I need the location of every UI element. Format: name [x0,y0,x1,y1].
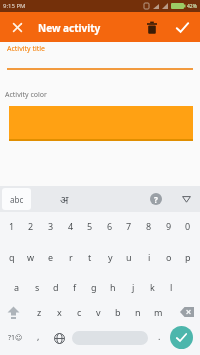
staticText: l [170,281,173,293]
button[interactable]: 4 [61,216,81,236]
staticText: s [35,281,40,293]
staticText: i [148,251,151,263]
button[interactable]: o [159,247,179,267]
button[interactable]: t [80,247,100,267]
staticText: 4 [68,220,74,232]
staticText: d [53,281,59,293]
staticText: 0 [185,220,191,232]
button[interactable]: f [65,277,85,297]
staticText: x [57,306,62,318]
staticText: . [158,330,161,342]
button[interactable]: d [46,277,66,297]
button[interactable]: q [2,247,22,267]
button[interactable]: c [69,302,89,322]
button[interactable]: 3 [41,216,61,236]
button[interactable]: w [21,247,41,267]
button[interactable]: b [108,302,128,322]
button[interactable]: अ [52,187,76,211]
button[interactable] [7,17,27,37]
staticText: 9:15 PM [3,2,26,10]
staticText: 42% [187,3,197,10]
button[interactable]: y [100,247,120,267]
button[interactable]: s [27,277,47,297]
button[interactable]: m [148,302,168,322]
button[interactable]: 5 [80,216,100,236]
staticText: k [150,281,155,293]
button[interactable] [141,16,163,38]
button[interactable]: u [119,247,139,267]
button[interactable] [2,302,24,322]
staticText: Activity color [5,90,47,100]
staticText: g [91,281,97,293]
staticText: t [88,251,92,263]
button[interactable]: 0 [178,216,198,236]
staticText: a [14,281,20,293]
button[interactable] [9,106,193,140]
staticText: 7 [126,220,132,232]
button[interactable]: h [103,277,123,297]
button[interactable] [170,326,193,349]
staticText: m [154,306,163,318]
staticText: 8 [146,220,152,232]
button[interactable] [178,188,194,210]
button[interactable]: 6 [100,216,120,236]
button[interactable] [171,16,193,38]
button[interactable]: z [29,302,49,322]
staticText: y [108,251,113,263]
button[interactable]: abc [2,188,31,210]
button[interactable]: v [88,302,108,322]
staticText: h [110,281,116,293]
staticText: z [37,306,42,318]
staticText: New activity [38,21,101,35]
staticText: 3 [48,220,54,232]
button[interactable]: e [41,247,61,267]
button[interactable]: 8 [139,216,159,236]
button[interactable]: p [178,247,198,267]
button[interactable] [176,302,198,322]
staticText: v [96,306,101,318]
button[interactable]: j [123,277,143,297]
button[interactable]: 1 [2,216,22,236]
staticText: 2 [28,220,34,232]
button[interactable]: l [161,277,181,297]
button[interactable]: n [128,302,148,322]
button[interactable]: a [7,277,27,297]
staticText: c [77,306,82,318]
button[interactable]: g [84,277,104,297]
button[interactable]: k [142,277,162,297]
staticText: o [166,251,172,263]
staticText: अ [60,192,69,207]
staticText: 1 [9,220,15,232]
button[interactable]: 7 [119,216,139,236]
staticText: q [9,251,15,263]
staticText: e [48,251,54,263]
staticText: 9 [166,220,172,232]
button[interactable] [49,328,69,348]
staticText: f [73,281,77,293]
staticText: r [69,251,73,263]
button[interactable]: . [149,326,169,346]
staticText: ?1☺ [8,333,23,343]
staticText: b [115,306,121,318]
staticText: , [37,330,40,342]
staticText: p [185,251,191,263]
staticText: abc [10,194,24,205]
button[interactable]: i [139,247,159,267]
staticText: u [126,251,132,263]
staticText: 5 [87,220,93,232]
staticText: Activity title [7,44,46,54]
button[interactable]: x [49,302,69,322]
staticText: 6 [107,220,113,232]
button[interactable]: 2 [21,216,41,236]
staticText: ? [154,194,158,205]
button[interactable] [72,331,148,345]
staticText: n [135,306,141,318]
staticText: w [27,251,35,263]
button[interactable]: , [28,326,48,346]
button[interactable]: 9 [159,216,179,236]
button[interactable]: r [61,247,81,267]
button[interactable]: ?1☺ [2,328,28,348]
button[interactable]: ? [150,193,162,205]
staticText: j [132,281,135,293]
